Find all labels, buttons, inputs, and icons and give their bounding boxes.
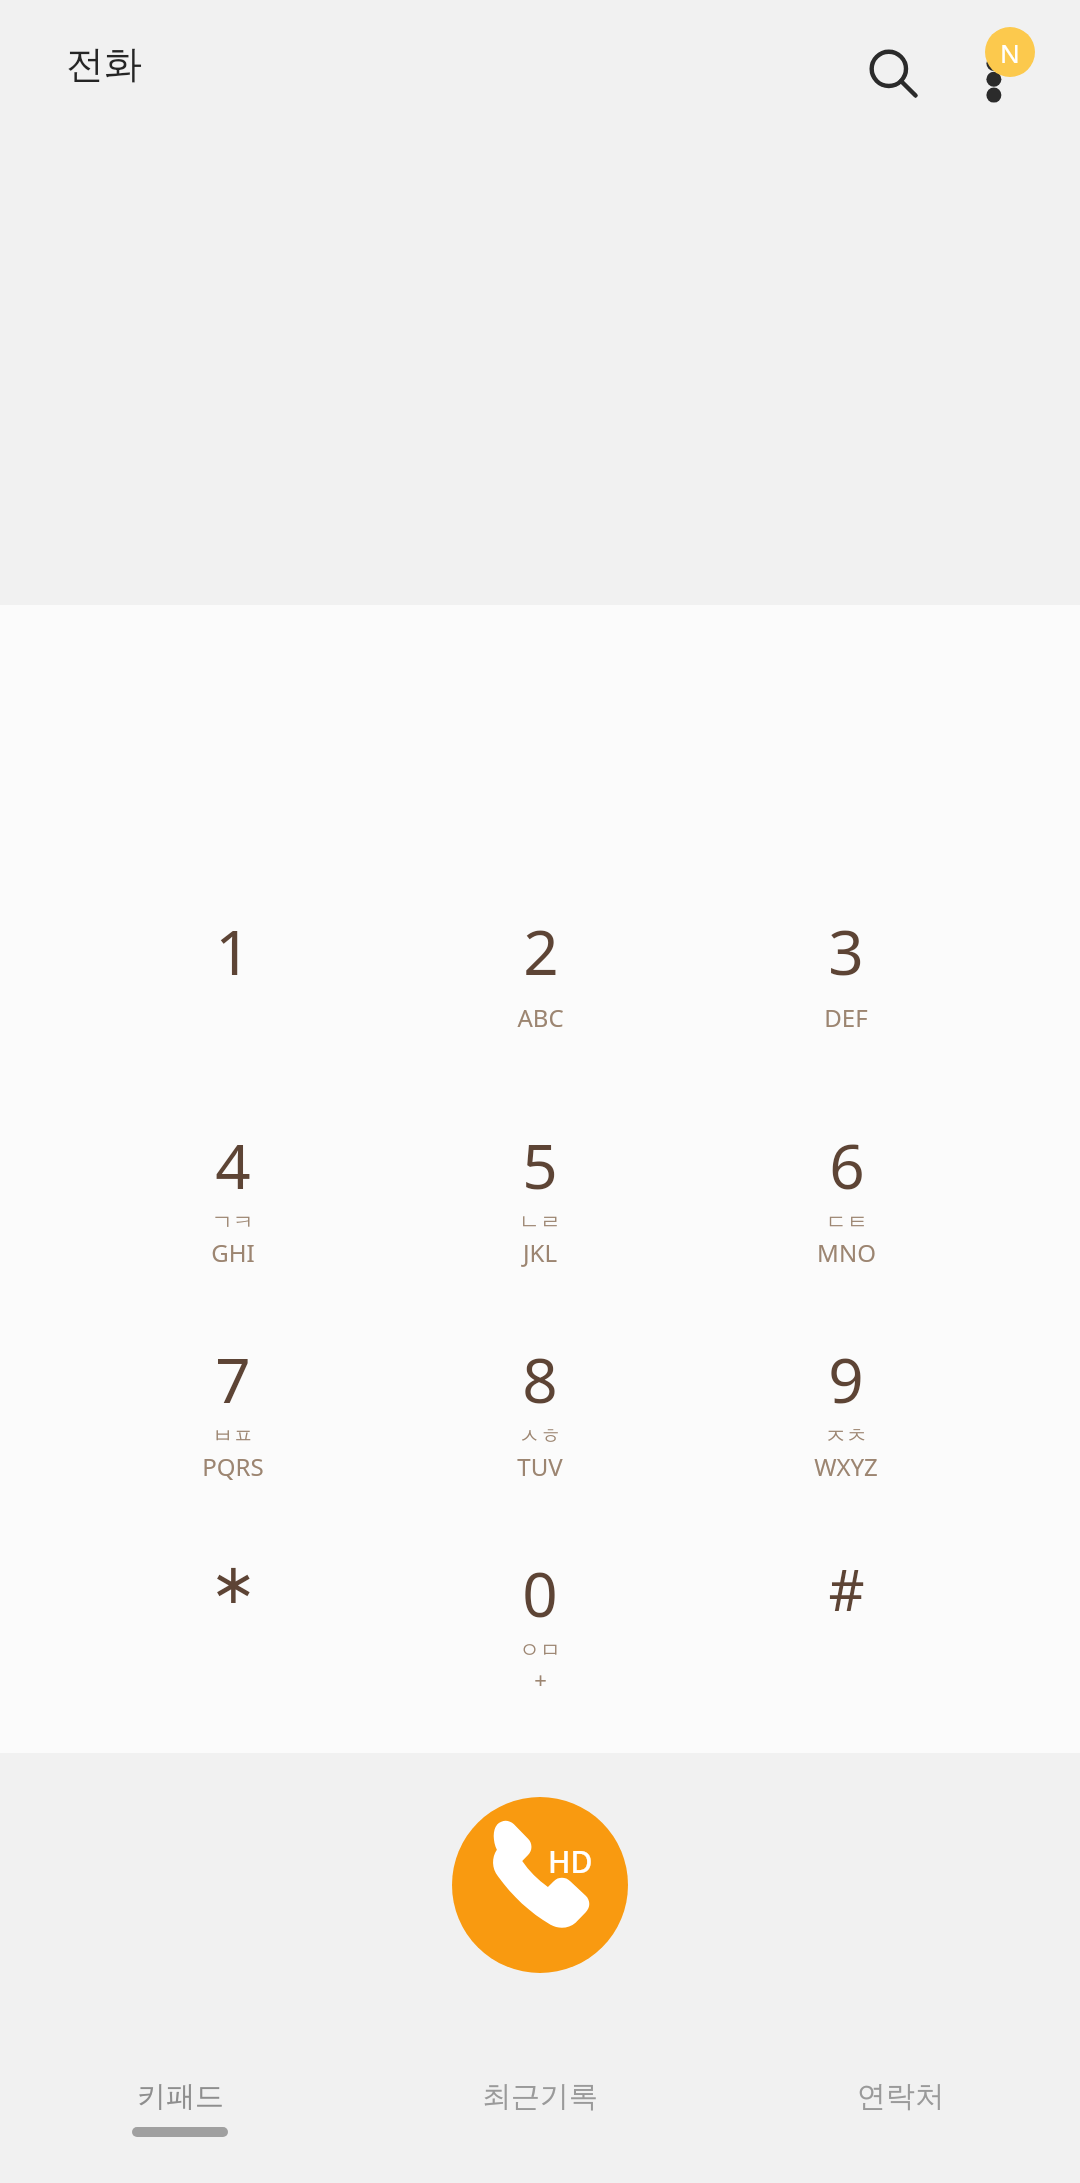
button[interactable]: 최근기록 xyxy=(360,2060,720,2183)
staticText: 6 xyxy=(829,1123,865,1207)
button[interactable]: Key 6 xyxy=(696,1123,996,1319)
staticText: HD xyxy=(548,1841,593,1882)
staticText: ㄷㅌ xyxy=(826,1209,868,1235)
button[interactable]: 키패드 xyxy=(0,2060,360,2183)
button[interactable]: Key 9 xyxy=(696,1337,996,1533)
staticText: ㅅㅎ xyxy=(519,1423,561,1449)
button[interactable]: Key 3 xyxy=(696,909,996,1105)
staticText: ABC xyxy=(517,1001,564,1034)
staticText: ㅂㅍ xyxy=(212,1423,254,1449)
staticText: 1 xyxy=(215,909,251,993)
staticText: 7 xyxy=(215,1337,251,1421)
staticText: ∗ xyxy=(210,1551,257,1616)
button[interactable]: Key 8 xyxy=(390,1337,690,1533)
button[interactable]: 전화 xyxy=(62,36,146,92)
staticText: 2 xyxy=(523,909,559,993)
staticText: 최근기록 xyxy=(482,2078,598,2115)
staticText: ㄴㄹ xyxy=(519,1209,561,1235)
staticText: WXYZ xyxy=(814,1450,878,1483)
staticText: 키패드 xyxy=(137,2078,224,2115)
staticText: 연락처 xyxy=(857,2078,944,2115)
staticText: N xyxy=(1000,35,1020,70)
button[interactable]: Search xyxy=(845,25,941,121)
staticText: + xyxy=(534,1664,547,1694)
button[interactable]: Key 0 xyxy=(390,1551,690,1747)
staticText: MNO xyxy=(817,1236,876,1269)
button[interactable]: 연락처 xyxy=(720,2060,1080,2183)
staticText: TUV xyxy=(517,1450,563,1483)
button[interactable]: Key # xyxy=(696,1551,996,1747)
button[interactable]: Key 4 xyxy=(83,1123,383,1319)
staticText: PQRS xyxy=(202,1450,264,1483)
button[interactable]: Call xyxy=(452,1797,628,1973)
button[interactable]: Key 1 xyxy=(83,909,383,1105)
staticText: # xyxy=(828,1551,865,1627)
staticText: GHI xyxy=(211,1236,255,1269)
staticText: 3 xyxy=(828,909,864,993)
staticText: 전화 xyxy=(66,40,142,88)
staticText: ㅈㅊ xyxy=(825,1423,867,1449)
staticText: ㄱㅋ xyxy=(212,1209,254,1235)
button[interactable]: More options xyxy=(955,25,1051,121)
staticText: ㅇㅁ xyxy=(519,1637,561,1663)
staticText: 4 xyxy=(215,1123,251,1207)
staticText: DEF xyxy=(824,1001,868,1034)
staticText: 9 xyxy=(828,1337,864,1421)
staticText: JKL xyxy=(523,1236,557,1269)
staticText: 5 xyxy=(522,1123,558,1207)
button[interactable]: Key 2 xyxy=(390,909,690,1105)
button[interactable]: Key 5 xyxy=(390,1123,690,1319)
button[interactable]: Key ∗ xyxy=(83,1551,383,1747)
staticText: 8 xyxy=(522,1337,558,1421)
button[interactable]: Key 7 xyxy=(83,1337,383,1533)
staticText: 0 xyxy=(522,1551,558,1635)
